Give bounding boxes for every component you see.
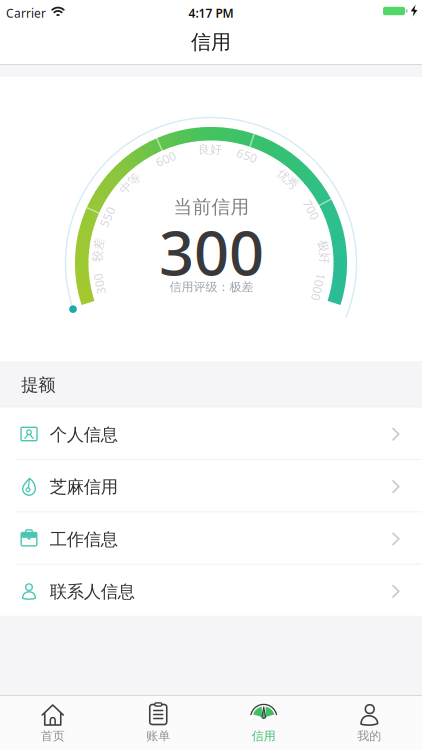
button[interactable]: 个人信息 <box>0 407 422 459</box>
staticText: 600 <box>155 151 176 167</box>
staticText: 极好 <box>312 245 336 259</box>
staticText: 700 <box>301 202 322 218</box>
staticText: 我的 <box>357 729 381 743</box>
button[interactable]: 账单 <box>105 696 211 750</box>
staticText: 信用 <box>191 30 231 54</box>
button[interactable]: 信用 <box>211 696 316 750</box>
staticText: 提额 <box>21 374 55 396</box>
staticText: 4:17 PM <box>188 5 233 21</box>
staticText: 300 <box>159 211 264 292</box>
staticText: 较差 <box>86 243 110 257</box>
staticText: 良好 <box>198 142 222 157</box>
staticText: 信用 <box>252 729 276 743</box>
button[interactable]: 首页 <box>0 696 105 750</box>
staticText: Carrier <box>6 5 46 21</box>
staticText: 联系人信息 <box>50 581 135 602</box>
button[interactable]: 芝麻信用 <box>0 459 422 512</box>
button[interactable]: 我的 <box>316 696 422 750</box>
staticText: 550 <box>97 209 118 225</box>
staticText: 个人信息 <box>50 424 118 445</box>
staticText: 信用评级：极差 <box>169 280 253 294</box>
staticText: 首页 <box>41 729 65 743</box>
staticText: 1000 <box>304 279 332 295</box>
staticText: 优秀 <box>276 172 300 187</box>
staticText: 账单 <box>146 729 170 743</box>
staticText: 芝麻信用 <box>50 476 118 498</box>
staticText: 中等 <box>118 176 142 191</box>
staticText: 工作信息 <box>50 529 118 550</box>
staticText: 650 <box>236 147 257 163</box>
button[interactable]: 工作信息 <box>0 512 422 564</box>
button[interactable]: 联系人信息 <box>0 564 422 616</box>
staticText: 300 <box>89 276 110 292</box>
staticText: 当前信用 <box>173 195 249 218</box>
